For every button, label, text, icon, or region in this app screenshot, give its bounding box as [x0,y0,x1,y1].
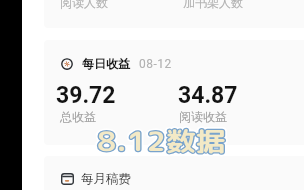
other: Monthly fee [61,173,74,185]
staticText: 每日收益 [82,56,130,71]
other: Daily earnings [61,58,73,70]
button[interactable]: Daily earnings [44,40,304,145]
button[interactable]: 阅读人数 [44,0,304,28]
staticText: 加书架人数 [183,0,243,10]
staticText: 阅读人数 [60,0,108,10]
staticText: 08-12 [139,57,172,71]
staticText: 每月稿费 [81,171,131,187]
staticText: 34.87 [178,82,238,109]
button[interactable]: Monthly fee [44,156,304,190]
staticText: 阅读收益 [179,109,227,124]
staticText: 39.72 [56,82,116,109]
staticText: 总收益 [60,109,96,124]
